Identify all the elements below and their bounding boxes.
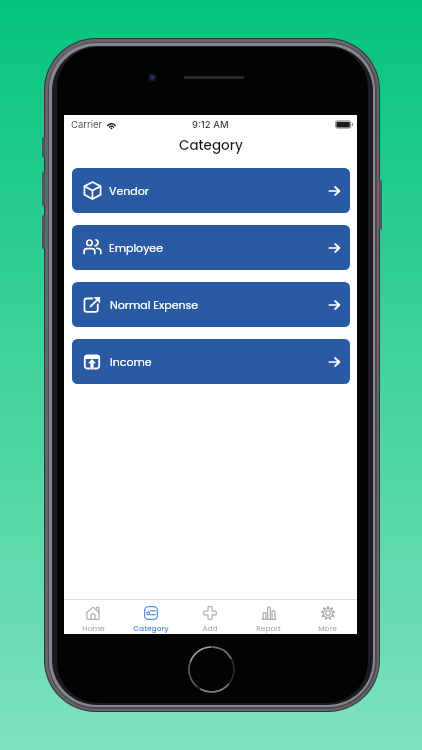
staticText: Add xyxy=(202,623,218,633)
button[interactable]: Home xyxy=(64,600,122,634)
staticText: Employee xyxy=(109,240,163,255)
button[interactable]: Open Normal Expense category xyxy=(72,282,350,327)
staticText: 9:12 AM xyxy=(192,119,229,130)
staticText: Category xyxy=(133,623,169,633)
staticText: Home xyxy=(82,623,105,633)
button[interactable]: Report xyxy=(239,600,298,634)
button[interactable]: Add xyxy=(180,600,239,634)
staticText: Normal Expense xyxy=(110,297,199,312)
button[interactable]: Category xyxy=(122,600,180,634)
staticText: Income xyxy=(110,354,152,369)
staticText: Vendor xyxy=(109,183,149,198)
staticText: More xyxy=(318,623,337,633)
staticText: Category xyxy=(179,136,243,155)
button[interactable]: Open Employee category xyxy=(72,225,350,270)
staticText: Carrier xyxy=(71,119,103,130)
button[interactable]: More xyxy=(298,600,357,634)
button[interactable]: Open Income category xyxy=(72,339,350,384)
staticText: Report xyxy=(256,623,281,633)
button[interactable]: Open Vendor category xyxy=(72,168,350,213)
